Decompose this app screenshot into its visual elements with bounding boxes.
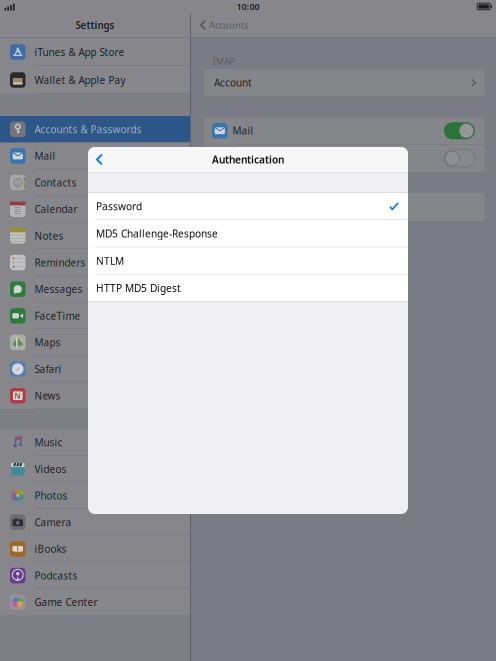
button[interactable]: Music xyxy=(0,429,190,456)
staticText: FaceTime xyxy=(34,309,80,323)
staticText: N xyxy=(14,390,21,401)
staticText: Reminders xyxy=(34,256,85,269)
button[interactable]: Mail xyxy=(0,143,190,169)
button[interactable]: Podcasts xyxy=(0,562,190,589)
button[interactable]: Contacts xyxy=(0,169,190,196)
button[interactable]: iTunes & App Store xyxy=(0,38,190,66)
button[interactable]: Camera xyxy=(0,509,190,536)
button[interactable]: NTLM xyxy=(88,247,408,274)
button[interactable]: Maps xyxy=(0,329,190,356)
button[interactable]: Videos xyxy=(0,456,190,482)
staticText: iTunes & App Store xyxy=(34,45,124,59)
button[interactable]: Password xyxy=(88,193,408,220)
button[interactable]: Wallet & Apple Pay xyxy=(0,66,190,94)
staticText: Safari xyxy=(34,362,61,376)
staticText: IMAP xyxy=(213,56,234,67)
button[interactable]: Messages xyxy=(0,276,190,302)
button[interactable]: Photos xyxy=(0,482,190,509)
staticText: Notes xyxy=(34,229,63,243)
button[interactable]: N xyxy=(0,382,190,409)
staticText: NTLM xyxy=(96,254,124,268)
staticText: Game Center xyxy=(34,595,97,609)
staticText: MD5 Challenge-Response xyxy=(96,227,218,240)
staticText: Maps xyxy=(34,336,60,349)
button[interactable]: Calendar xyxy=(0,196,190,222)
staticText: Password xyxy=(96,199,142,213)
staticText: Calendar xyxy=(34,202,77,216)
staticText: HTTP MD5 Digest xyxy=(96,281,181,295)
staticText: Notes xyxy=(232,151,261,165)
staticText: Accounts xyxy=(209,19,248,31)
staticText: Accounts & Passwords xyxy=(34,122,141,136)
staticText: Settings xyxy=(75,18,114,32)
button[interactable]: MD5 Challenge-Response xyxy=(88,220,408,247)
staticText: 10:00 xyxy=(236,0,259,13)
staticText: Wallet & Apple Pay xyxy=(34,73,125,87)
button[interactable]: Reminders xyxy=(0,249,190,276)
staticText: Music xyxy=(34,435,62,449)
button[interactable]: Accounts xyxy=(191,15,248,35)
button[interactable]: Game Center xyxy=(0,589,190,615)
staticText: Photos xyxy=(34,489,67,502)
button[interactable]: FaceTime xyxy=(0,302,190,329)
button[interactable]: Back xyxy=(88,149,113,170)
staticText: iBooks xyxy=(34,542,66,556)
staticText: Camera xyxy=(34,515,71,529)
button[interactable]: Accounts & Passwords xyxy=(0,116,190,143)
staticText: Contacts xyxy=(34,176,76,189)
button[interactable]: iBooks xyxy=(0,536,190,562)
button[interactable]: Safari xyxy=(0,356,190,382)
staticText: Videos xyxy=(34,462,66,476)
button[interactable]: HTTP MD5 Digest xyxy=(88,275,408,301)
staticText: News xyxy=(34,389,60,402)
staticText: Authentication xyxy=(212,153,284,166)
staticText: Mail xyxy=(232,124,253,137)
staticText: Account xyxy=(214,76,252,89)
button[interactable]: Notes xyxy=(0,223,190,249)
staticText: Messages xyxy=(34,282,82,296)
button[interactable]: Account xyxy=(204,69,485,96)
staticText: Mail xyxy=(34,149,55,163)
staticText: Podcasts xyxy=(34,569,77,582)
